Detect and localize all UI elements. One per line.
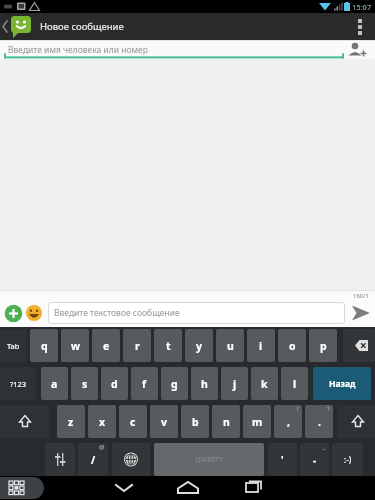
- staticText: f: [142, 377, 147, 391]
- button[interactable]: z: [57, 405, 85, 438]
- button[interactable]: n: [212, 405, 240, 438]
- button[interactable]: [45, 443, 75, 476]
- button[interactable]: t: [154, 329, 182, 362]
- staticText: 160/1: [353, 292, 369, 300]
- staticText: k: [261, 377, 268, 391]
- staticText: m: [252, 415, 263, 429]
- button[interactable]: :-): [332, 443, 363, 476]
- button[interactable]: /: [78, 443, 108, 476]
- button[interactable]: [4, 304, 23, 323]
- staticText: q: [41, 339, 48, 353]
- button[interactable]: ': [268, 443, 297, 476]
- staticText: s: [82, 377, 88, 391]
- button[interactable]: [112, 443, 150, 476]
- staticText: t: [166, 339, 171, 353]
- staticText: Введите текстовое сообщение: [54, 307, 180, 319]
- staticText: x: [99, 415, 106, 429]
- staticText: .: [318, 415, 321, 429]
- staticText: ': [281, 453, 284, 467]
- staticText: c: [130, 415, 136, 429]
- staticText: Новое сообщение: [40, 20, 124, 33]
- button[interactable]: k: [251, 367, 278, 400]
- staticText: QWERTY: [195, 455, 224, 465]
- staticText: ?: [327, 405, 330, 413]
- staticText: r: [135, 339, 140, 353]
- staticText: Введите имя человека или номер: [8, 44, 148, 56]
- button[interactable]: a: [41, 367, 68, 400]
- button[interactable]: [337, 405, 375, 438]
- button[interactable]: QWERTY: [154, 443, 264, 476]
- staticText: g: [171, 377, 178, 391]
- button[interactable]: [208, 476, 248, 500]
- staticText: z: [68, 415, 74, 429]
- button[interactable]: e: [92, 329, 120, 362]
- staticText: _: [323, 443, 326, 451]
- button[interactable]: w: [61, 329, 89, 362]
- staticText: i: [259, 339, 263, 353]
- staticText: b: [192, 415, 199, 429]
- button[interactable]: [25, 304, 43, 322]
- staticText: /: [91, 453, 96, 467]
- button[interactable]: f: [131, 367, 158, 400]
- button[interactable]: ?123: [0, 367, 36, 400]
- staticText: n: [223, 415, 230, 429]
- staticText: :-): [344, 454, 352, 465]
- staticText: h: [201, 377, 208, 391]
- button[interactable]: u: [216, 329, 244, 362]
- button[interactable]: g: [161, 367, 188, 400]
- staticText: w: [71, 339, 80, 353]
- staticText: u: [227, 339, 234, 353]
- button[interactable]: q: [30, 329, 58, 362]
- staticText: 15:07: [352, 2, 372, 12]
- button[interactable]: .: [305, 405, 333, 438]
- button[interactable]: v: [150, 405, 178, 438]
- staticText: !: [297, 405, 299, 413]
- staticText: ?123: [10, 379, 27, 389]
- staticText: v: [161, 415, 167, 429]
- button[interactable]: j: [221, 367, 248, 400]
- button[interactable]: y: [185, 329, 213, 362]
- button[interactable]: Tab: [0, 329, 27, 362]
- staticText: @: [99, 443, 105, 451]
- button[interactable]: [343, 329, 375, 362]
- button[interactable]: [351, 13, 368, 40]
- button[interactable]: Назад: [313, 367, 371, 400]
- staticText: d: [111, 377, 118, 391]
- button[interactable]: l: [281, 367, 308, 400]
- button[interactable]: r: [123, 329, 151, 362]
- staticText: Tab: [7, 341, 20, 351]
- button[interactable]: d: [101, 367, 128, 400]
- button[interactable]: [0, 405, 50, 438]
- button[interactable]: [168, 476, 208, 500]
- staticText: a: [51, 377, 58, 391]
- staticText: ,: [287, 415, 290, 429]
- button[interactable]: m: [243, 405, 271, 438]
- button[interactable]: c: [119, 405, 147, 438]
- button[interactable]: b: [181, 405, 209, 438]
- staticText: p: [320, 339, 327, 353]
- button[interactable]: o: [278, 329, 306, 362]
- staticText: y: [196, 339, 202, 353]
- button[interactable]: s: [71, 367, 98, 400]
- button[interactable]: Введите текстовое сообщение: [48, 302, 345, 324]
- button[interactable]: -: [300, 443, 329, 476]
- button[interactable]: ,: [274, 405, 302, 438]
- button[interactable]: [0, 477, 44, 499]
- staticText: l: [293, 377, 297, 391]
- staticText: -: [313, 453, 317, 467]
- staticText: Назад: [329, 378, 356, 390]
- staticText: j: [233, 377, 237, 391]
- button[interactable]: [351, 304, 371, 322]
- staticText: e: [103, 339, 110, 353]
- button[interactable]: x: [88, 405, 116, 438]
- button[interactable]: Введите имя человека или номер: [0, 40, 375, 59]
- button[interactable]: h: [191, 367, 218, 400]
- button[interactable]: i: [247, 329, 275, 362]
- button[interactable]: p: [309, 329, 337, 362]
- staticText: o: [289, 339, 296, 353]
- button[interactable]: [128, 476, 168, 500]
- button[interactable]: Новое сообщение: [0, 13, 375, 40]
